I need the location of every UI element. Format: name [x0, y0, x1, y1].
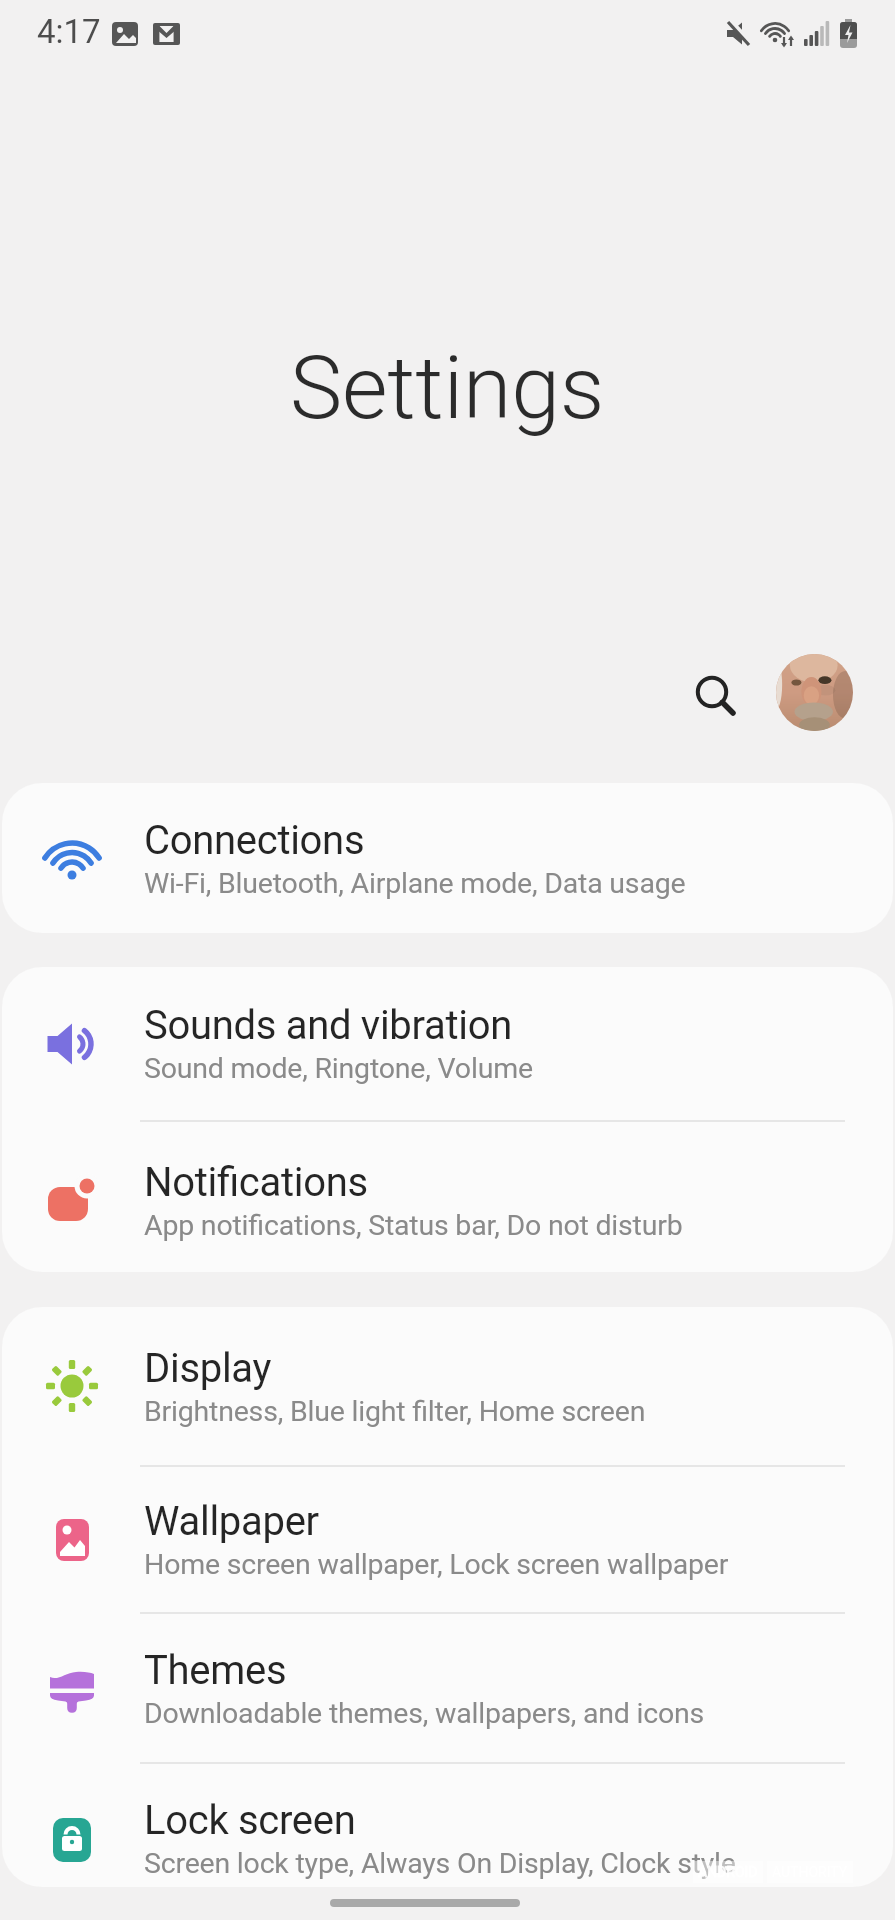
staticText: Connections: [144, 817, 365, 864]
staticText: Home screen wallpaper, Lock screen wallp…: [144, 1548, 729, 1581]
staticText: Sound mode, Ringtone, Volume: [144, 1052, 533, 1085]
staticText: Settings: [290, 336, 605, 439]
staticText: Sounds and vibration: [144, 1002, 512, 1049]
staticText: Themes: [144, 1647, 287, 1694]
staticText: 4:17: [37, 12, 101, 51]
staticText: App notifications, Status bar, Do not di…: [144, 1209, 683, 1242]
button[interactable]: Connections: [2, 783, 893, 933]
staticText: Downloadable themes, wallpapers, and ico…: [144, 1697, 705, 1730]
button[interactable]: Lock screen: [2, 1764, 893, 1887]
button[interactable]: [330, 1899, 520, 1907]
staticText: Wallpaper: [144, 1498, 319, 1545]
staticText: Screen lock type, Always On Display, Clo…: [144, 1847, 736, 1880]
button[interactable]: Display: [2, 1307, 893, 1465]
button[interactable]: Sounds and vibration: [2, 967, 893, 1120]
staticText: Display: [144, 1345, 272, 1392]
button[interactable]: [776, 654, 853, 731]
button[interactable]: Wallpaper: [2, 1467, 893, 1612]
staticText: ANDROID: [698, 1864, 758, 1880]
staticText: Lock screen: [144, 1797, 356, 1844]
button[interactable]: Notifications: [2, 1122, 893, 1272]
staticText: Notifications: [144, 1159, 368, 1206]
staticText: Brightness, Blue light filter, Home scre…: [144, 1395, 646, 1428]
button[interactable]: [672, 652, 752, 732]
staticText: Wi-Fi, Bluetooth, Airplane mode, Data us…: [144, 867, 686, 900]
button[interactable]: Themes: [2, 1614, 893, 1762]
